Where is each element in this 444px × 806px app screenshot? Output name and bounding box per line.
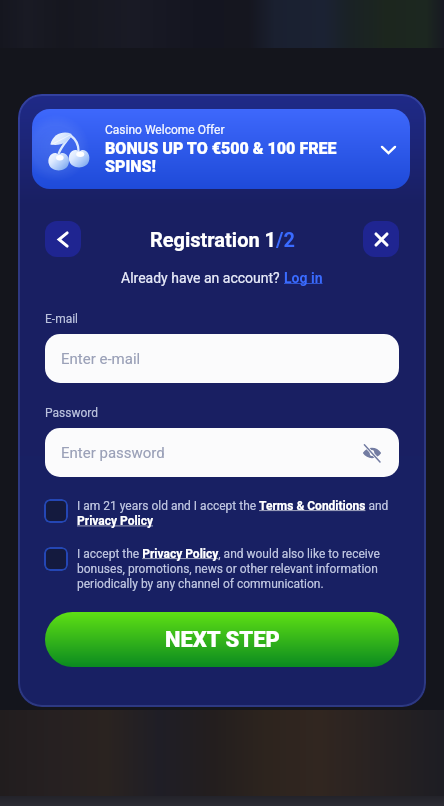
staticText: Already have an account? [121,270,284,286]
staticText: Password [45,406,99,420]
button[interactable]: Expand offer [374,135,402,163]
button[interactable]: Close [363,221,399,257]
button[interactable]: Show password [359,440,385,466]
staticText: Log in [284,270,323,286]
button[interactable]: Accept marketing communications [44,547,68,571]
staticText: Registration 1/2 [150,228,295,251]
staticText: Enter e-mail [61,350,141,368]
staticText: I am 21 years old and I accept the Terms… [77,499,398,528]
button[interactable]: Enter e-mail [45,334,399,383]
button[interactable]: Back [45,221,81,257]
staticText: E-mail [45,312,79,326]
staticText: BONUS UP TO €500 & 100 FREE SPINS! [105,139,368,176]
button[interactable]: NEXT STEP [45,612,399,667]
staticText: NEXT STEP [165,627,280,653]
button[interactable]: Enter password [45,428,399,477]
button[interactable]: I am 21 years old and accept terms [44,499,68,523]
staticText: Casino Welcome Offer [105,123,225,137]
button[interactable]: Log in [284,270,323,286]
staticText: Enter password [61,444,165,462]
staticText: I accept the Privacy Policy, and would a… [77,547,398,591]
button[interactable]: Casino Welcome Offer [32,109,410,189]
